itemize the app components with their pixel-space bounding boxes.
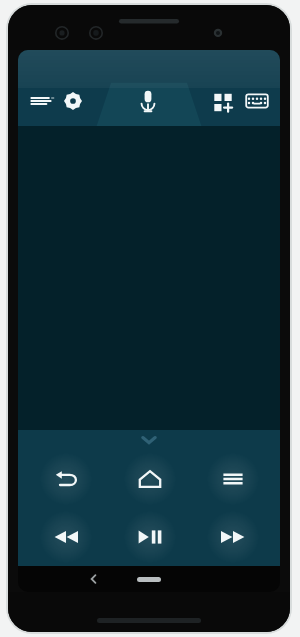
button[interactable]: Keyboard xyxy=(242,86,272,116)
button[interactable]: Collapse xyxy=(18,430,280,450)
button[interactable]: Recents xyxy=(207,453,259,505)
button[interactable]: Play or pause xyxy=(124,511,176,563)
button[interactable]: Apps xyxy=(208,86,238,116)
button[interactable]: Rewind xyxy=(40,511,92,563)
button[interactable]: Settings xyxy=(58,86,88,116)
button[interactable]: Back xyxy=(74,566,114,592)
button[interactable]: Menu xyxy=(26,86,56,116)
button[interactable]: Back xyxy=(40,453,92,505)
button[interactable]: Fast forward xyxy=(207,511,259,563)
button[interactable]: Home xyxy=(129,570,169,588)
button[interactable]: Voice input xyxy=(131,84,165,118)
button[interactable]: Home xyxy=(124,453,176,505)
